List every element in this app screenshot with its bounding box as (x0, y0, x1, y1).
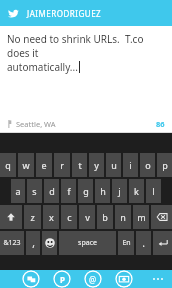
staticText: e (41, 159, 47, 171)
button[interactable]: a (11, 179, 25, 203)
staticText: d (49, 185, 55, 197)
button[interactable]: l (146, 179, 161, 203)
staticText: P (60, 274, 65, 285)
staticText: f (67, 185, 71, 197)
button[interactable]: b (97, 205, 113, 229)
button[interactable]: v (79, 205, 95, 229)
staticText: n (120, 211, 126, 223)
staticText: s (32, 185, 37, 197)
staticText: . (142, 236, 145, 250)
staticText: i (129, 159, 132, 171)
button[interactable]: s (27, 179, 42, 203)
staticText: z (30, 211, 35, 223)
staticText: v (85, 211, 90, 223)
button[interactable]: r (54, 153, 70, 177)
staticText: JAIMERODRIGUEZ (27, 8, 102, 19)
button[interactable]: , (26, 231, 40, 255)
staticText: q (5, 159, 11, 171)
staticText: automatically... (7, 60, 78, 74)
staticText: 86 (156, 119, 165, 129)
staticText: h (100, 185, 106, 197)
button[interactable]: w (18, 153, 34, 177)
staticText: Seattle, WA (16, 119, 56, 129)
button[interactable]: c (61, 205, 77, 229)
button[interactable]: Enter (153, 231, 172, 255)
button[interactable]: x (43, 205, 59, 229)
staticText: t (78, 159, 82, 171)
button[interactable]: q (0, 153, 16, 177)
staticText: u (111, 159, 117, 171)
button[interactable]: d (44, 179, 59, 203)
button[interactable]: m (133, 205, 149, 229)
button[interactable]: y (89, 153, 104, 177)
button[interactable]: p (157, 153, 172, 177)
button[interactable]: g (78, 179, 93, 203)
button[interactable]: Mention (84, 270, 102, 288)
button[interactable]: n (115, 205, 131, 229)
button[interactable]: Send tweet (22, 270, 40, 288)
staticText: y (94, 159, 99, 171)
button[interactable]: o (140, 153, 155, 177)
button[interactable]: j (112, 179, 127, 203)
staticText: &123 (3, 238, 21, 248)
staticText: p (162, 159, 168, 171)
staticText: space (78, 238, 97, 248)
staticText: a (15, 185, 21, 197)
button[interactable]: h (95, 179, 110, 203)
button[interactable]: No need to shrink URLs. T.co does it (0, 26, 172, 115)
button[interactable]: z (24, 205, 41, 229)
staticText: m (137, 211, 146, 223)
button[interactable]: . (136, 231, 151, 255)
staticText: @ (89, 274, 97, 285)
button[interactable]: Add photo (115, 270, 133, 288)
staticText: g (83, 185, 89, 197)
staticText: l (152, 185, 155, 197)
button[interactable]: Shift (0, 205, 22, 229)
staticText: j (118, 185, 121, 197)
button[interactable]: f (61, 179, 76, 203)
staticText: , (32, 236, 35, 250)
button[interactable]: Backspace (151, 205, 172, 229)
button[interactable]: k (129, 179, 144, 203)
button[interactable]: u (106, 153, 121, 177)
staticText: w (22, 159, 30, 171)
staticText: En (122, 238, 131, 248)
button[interactable]: space (59, 231, 116, 255)
button[interactable]: t (72, 153, 87, 177)
button[interactable]: i (123, 153, 138, 177)
staticText: c (67, 211, 72, 223)
button[interactable]: More options (150, 271, 166, 287)
staticText: k (134, 185, 139, 197)
staticText: b (102, 211, 108, 223)
button[interactable]: Seattle, WA (7, 119, 56, 129)
button[interactable]: En (118, 231, 134, 255)
staticText: o (145, 159, 151, 171)
staticText: x (49, 211, 54, 223)
staticText: r (60, 159, 64, 171)
button[interactable]: Add location (53, 270, 71, 288)
button[interactable]: Emoji (42, 231, 57, 255)
button[interactable]: e (36, 153, 52, 177)
staticText: No need to shrink URLs. T.co does it (7, 32, 165, 60)
button[interactable]: &123 (0, 231, 24, 255)
